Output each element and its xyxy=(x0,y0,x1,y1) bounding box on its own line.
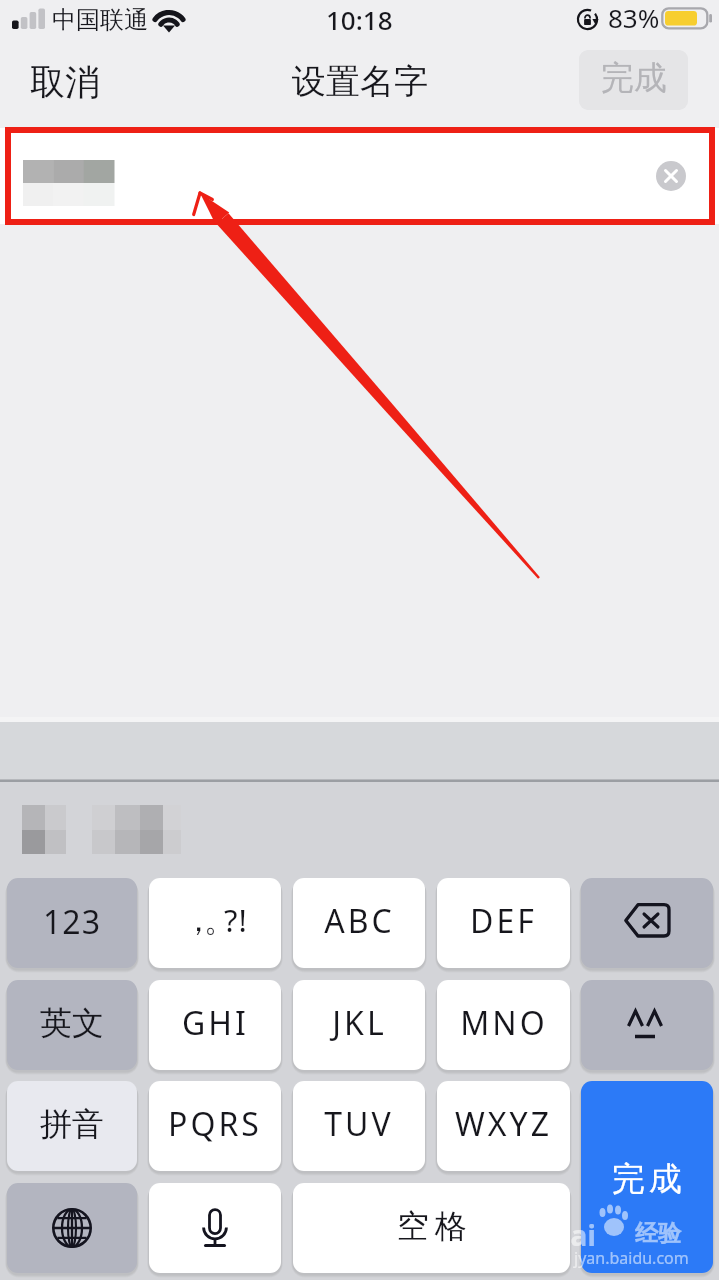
staticText: 设置名字 xyxy=(292,60,428,103)
button[interactable]: 123 xyxy=(7,878,137,968)
button[interactable]: 完成 xyxy=(581,1081,713,1273)
staticText: 经验 xyxy=(635,1219,681,1248)
staticText: 取消 xyxy=(30,60,100,104)
button[interactable]: MNO xyxy=(437,980,570,1070)
button[interactable]: DEF xyxy=(437,878,570,968)
button[interactable]: 拼音 xyxy=(7,1081,137,1171)
staticText: 英文 xyxy=(40,1003,104,1043)
button[interactable]: Emoticons xyxy=(581,980,713,1070)
staticText: GHI xyxy=(182,1001,249,1045)
button[interactable]: Delete xyxy=(581,878,713,968)
staticText: PQRS xyxy=(168,1102,262,1146)
staticText: DEF xyxy=(470,899,537,943)
button[interactable]: PQRS xyxy=(149,1081,281,1171)
staticText: 10:18 xyxy=(326,2,393,37)
button[interactable]: JKL xyxy=(293,980,425,1070)
staticText: ，。 xyxy=(188,901,230,940)
button[interactable]: ABC xyxy=(293,878,425,968)
button[interactable]: Switch keyboard xyxy=(7,1183,137,1273)
staticText: 完成 xyxy=(601,57,667,99)
staticText: 83% xyxy=(608,0,660,35)
button[interactable]: WXYZ xyxy=(437,1081,570,1171)
staticText: ?! xyxy=(224,899,248,941)
staticText: Bai xyxy=(552,1216,596,1254)
staticText: 空格 xyxy=(394,1206,470,1246)
button[interactable]: TUV xyxy=(293,1081,425,1171)
staticText: JKL xyxy=(332,1001,387,1045)
staticText: TUV xyxy=(324,1102,394,1146)
button[interactable]: Clear text xyxy=(655,160,687,192)
button[interactable]: 英文 xyxy=(7,980,137,1070)
button[interactable]: ，。 xyxy=(149,878,281,968)
button[interactable]: Voice input xyxy=(149,1183,281,1273)
staticText: 完成 xyxy=(610,1158,684,1200)
button[interactable]: GHI xyxy=(149,980,281,1070)
staticText: WXYZ xyxy=(455,1102,552,1146)
staticText: 拼音 xyxy=(40,1104,104,1144)
staticText: 中国联通 xyxy=(52,5,148,35)
staticText: jyan.baidu.com xyxy=(574,1247,689,1269)
button[interactable]: 空格 xyxy=(293,1183,570,1273)
button[interactable]: 完成 xyxy=(579,50,688,110)
staticText: 123 xyxy=(43,900,101,944)
staticText: ABC xyxy=(324,899,395,943)
button[interactable]: 取消 xyxy=(24,54,106,118)
button[interactable]: Clear text xyxy=(0,128,719,224)
staticText: MNO xyxy=(460,1001,548,1045)
